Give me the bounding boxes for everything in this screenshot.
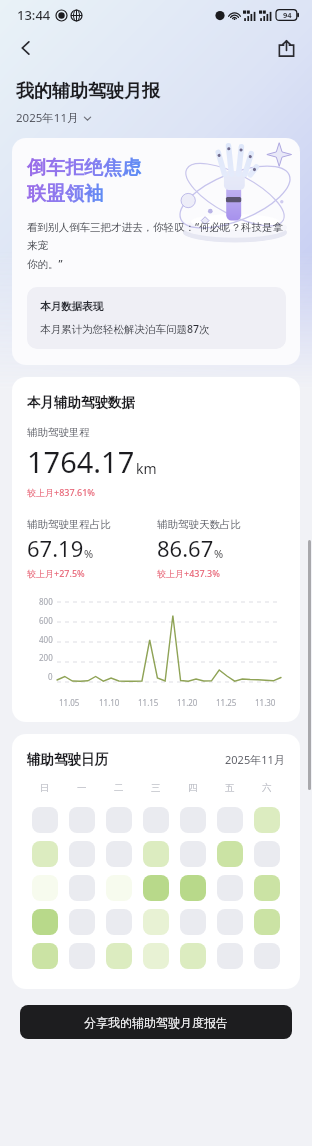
staticText: 1764.17 <box>27 442 135 481</box>
button[interactable] <box>254 807 280 833</box>
button[interactable] <box>217 943 243 969</box>
staticText: 看到别人倒车三把才进去，你轻叹：“何必呢？科技是拿来宠 你的。” <box>27 220 286 271</box>
button[interactable] <box>69 909 95 935</box>
button[interactable] <box>180 943 206 969</box>
button[interactable] <box>217 875 243 901</box>
staticText: 辅助驾驶天数占比 <box>157 518 241 531</box>
staticText: % <box>214 546 224 561</box>
button[interactable] <box>106 943 132 969</box>
button[interactable] <box>180 807 206 833</box>
staticText: 67.19 <box>27 533 84 563</box>
staticText: 0 <box>48 671 53 682</box>
button[interactable] <box>217 909 243 935</box>
button[interactable] <box>254 841 280 867</box>
staticText: 本月辅助驾驶数据 <box>27 394 135 411</box>
button[interactable]: 倒车拒绝焦虑 <box>12 138 300 365</box>
button[interactable] <box>106 841 132 867</box>
button[interactable] <box>217 841 243 867</box>
staticText: 200 <box>39 652 53 663</box>
staticText: 2025年11月 <box>16 110 79 126</box>
button[interactable] <box>69 807 95 833</box>
staticText: 94 <box>283 10 292 20</box>
staticText: 五 <box>225 782 235 794</box>
staticText: 六 <box>262 782 272 794</box>
button[interactable] <box>254 909 280 935</box>
staticText: 11.25 <box>216 697 237 708</box>
button[interactable] <box>106 909 132 935</box>
staticText: 日 <box>40 782 50 794</box>
button[interactable] <box>32 841 58 867</box>
staticText: % <box>84 546 94 561</box>
button[interactable] <box>143 943 169 969</box>
button[interactable] <box>32 943 58 969</box>
staticText: 四 <box>188 782 198 794</box>
staticText: 较上月+27.5% <box>27 567 85 579</box>
staticText: 2025年11月 <box>225 752 285 767</box>
button[interactable]: Share <box>268 30 304 66</box>
staticText: 600 <box>39 615 53 626</box>
staticText: 二 <box>114 782 124 794</box>
staticText: km <box>136 459 157 478</box>
button[interactable] <box>106 875 132 901</box>
button[interactable]: 辅助驾驶日历 <box>12 734 300 989</box>
button[interactable]: 2025年11月 <box>16 110 92 126</box>
staticText: 11.15 <box>138 697 159 708</box>
button[interactable] <box>254 943 280 969</box>
button[interactable] <box>106 807 132 833</box>
staticText: 400 <box>39 634 53 645</box>
staticText: 11.05 <box>59 697 80 708</box>
staticText: 较上月+837.61% <box>27 486 96 498</box>
staticText: 辅助驾驶日历 <box>27 751 108 768</box>
button[interactable] <box>143 909 169 935</box>
staticText: 我的辅助驾驶月报 <box>16 80 160 103</box>
staticText: 本月累计为您轻松解决泊车问题87次 <box>40 322 210 336</box>
staticText: 辅助驾驶里程 <box>27 426 90 439</box>
button[interactable] <box>143 841 169 867</box>
button[interactable] <box>69 841 95 867</box>
button[interactable] <box>32 807 58 833</box>
button[interactable] <box>180 841 206 867</box>
staticText: 分享我的辅助驾驶月度报告 <box>84 1015 228 1030</box>
staticText: 800 <box>39 596 53 607</box>
button[interactable]: 本月辅助驾驶数据 <box>12 377 300 722</box>
button[interactable] <box>217 807 243 833</box>
button[interactable] <box>143 807 169 833</box>
staticText: 倒车拒绝焦虑 <box>27 156 141 180</box>
staticText: 本月数据表现 <box>40 300 103 313</box>
button[interactable] <box>69 943 95 969</box>
staticText: 联盟领袖 <box>27 182 103 206</box>
staticText: 13:44 <box>17 6 51 24</box>
button[interactable] <box>69 875 95 901</box>
button[interactable] <box>32 875 58 901</box>
button[interactable] <box>32 909 58 935</box>
staticText: 三 <box>151 782 161 794</box>
button[interactable] <box>180 909 206 935</box>
staticText: 86.67 <box>157 533 214 563</box>
button[interactable] <box>143 875 169 901</box>
staticText: 一 <box>77 782 87 794</box>
button[interactable]: 分享我的辅助驾驶月度报告 <box>20 1005 292 1039</box>
button[interactable] <box>180 875 206 901</box>
button[interactable]: Back <box>8 30 44 66</box>
staticText: 较上月+437.3% <box>157 567 220 579</box>
button[interactable] <box>254 875 280 901</box>
staticText: 11.20 <box>177 697 198 708</box>
staticText: 辅助驾驶里程占比 <box>27 518 111 531</box>
staticText: 11.30 <box>255 697 276 708</box>
staticText: 11.10 <box>99 697 120 708</box>
